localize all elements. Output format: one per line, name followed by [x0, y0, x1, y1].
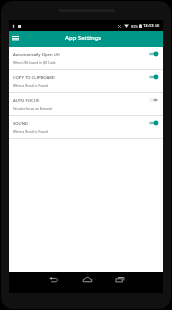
- button[interactable]: Open navigation drawer: [9, 30, 21, 46]
- staticText: COPY TO CLIPBOARD: [13, 75, 55, 81]
- button[interactable]: Home: [81, 273, 93, 285]
- button[interactable]: Recent apps: [114, 273, 126, 285]
- button[interactable]: COPY TO CLIPBOARD: [9, 70, 163, 93]
- button[interactable]: Back: [47, 273, 59, 285]
- staticText: AUTO FOCUS: [13, 98, 40, 104]
- staticText: When URL found in QR Code: [13, 61, 56, 65]
- staticText: App Settings: [65, 34, 102, 42]
- staticText: 83%: [131, 24, 138, 29]
- staticText: AM: [155, 24, 160, 28]
- staticText: When a Result is Found: [13, 84, 48, 88]
- button[interactable]: AUTO FOCUS: [9, 93, 163, 116]
- staticText: Set auto focus on Barcode: [13, 107, 53, 111]
- staticText: When a Result is Found: [13, 130, 48, 134]
- staticText: SOUND: [13, 121, 28, 127]
- button[interactable]: SOUND: [9, 116, 163, 139]
- staticText: Automatically Open Url: [13, 52, 60, 58]
- staticText: 12:13: [143, 23, 154, 29]
- button[interactable]: Automatically Open Url: [9, 47, 163, 70]
